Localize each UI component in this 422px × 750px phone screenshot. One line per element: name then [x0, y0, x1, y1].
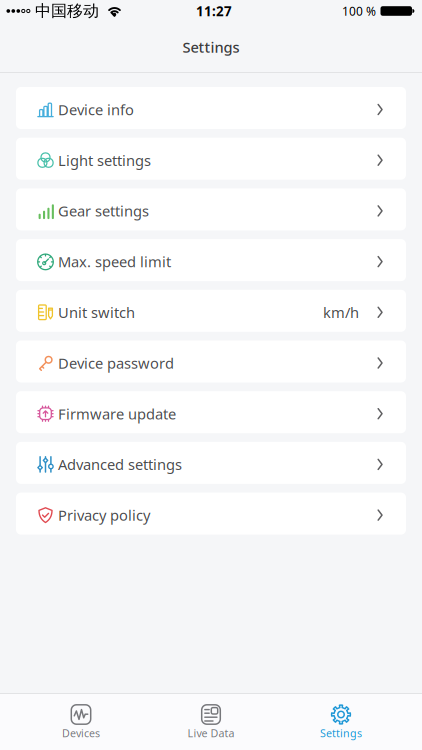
staticText: Unit switch	[58, 303, 135, 322]
button[interactable]: Max. speed limit	[16, 239, 406, 281]
button[interactable]: Live Data	[146, 704, 276, 740]
staticText: Gear settings	[58, 201, 149, 221]
staticText: Settings	[182, 37, 239, 57]
button[interactable]: Light settings	[16, 138, 406, 180]
staticText: 100 %	[342, 3, 376, 19]
staticText: Settings	[320, 726, 362, 740]
button[interactable]: Device password	[16, 340, 406, 382]
button[interactable]: Device info	[16, 87, 406, 129]
button[interactable]: Gear settings	[16, 188, 406, 230]
button[interactable]: Unit switch	[16, 290, 406, 332]
staticText: Device password	[58, 353, 174, 373]
button[interactable]: Settings	[276, 704, 406, 740]
staticText: 11:27	[196, 2, 232, 20]
staticText: Firmware update	[58, 404, 176, 423]
button[interactable]: Firmware update	[16, 391, 406, 433]
button[interactable]: Devices	[16, 704, 146, 740]
staticText: km/h	[323, 303, 359, 322]
staticText: Privacy policy	[58, 505, 150, 525]
staticText: Light settings	[58, 150, 151, 170]
staticText: Devices	[62, 726, 100, 740]
staticText: 中国移动	[35, 1, 99, 21]
staticText: Live Data	[187, 726, 234, 740]
staticText: Advanced settings	[58, 455, 182, 474]
button[interactable]: Advanced settings	[16, 442, 406, 484]
button[interactable]: Privacy policy	[16, 493, 406, 535]
staticText: Device info	[58, 100, 134, 119]
staticText: Max. speed limit	[58, 252, 171, 271]
